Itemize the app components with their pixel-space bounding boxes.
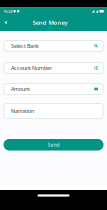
staticText: Narration [11, 107, 34, 115]
staticText: 16:24 [3, 9, 12, 14]
button[interactable]: Send [3, 139, 103, 150]
staticText: Account Number [11, 64, 52, 72]
button[interactable]: Back [2, 18, 10, 27]
button[interactable]: Select Bank [3, 40, 103, 52]
button[interactable]: Narration [3, 103, 103, 119]
staticText: Amount [11, 85, 30, 93]
staticText: Send Money [32, 18, 67, 26]
staticText: Select Bank [11, 42, 39, 50]
button[interactable]: Amount [3, 83, 103, 95]
button[interactable]: Account Number [3, 62, 103, 74]
staticText: Send [47, 141, 59, 148]
